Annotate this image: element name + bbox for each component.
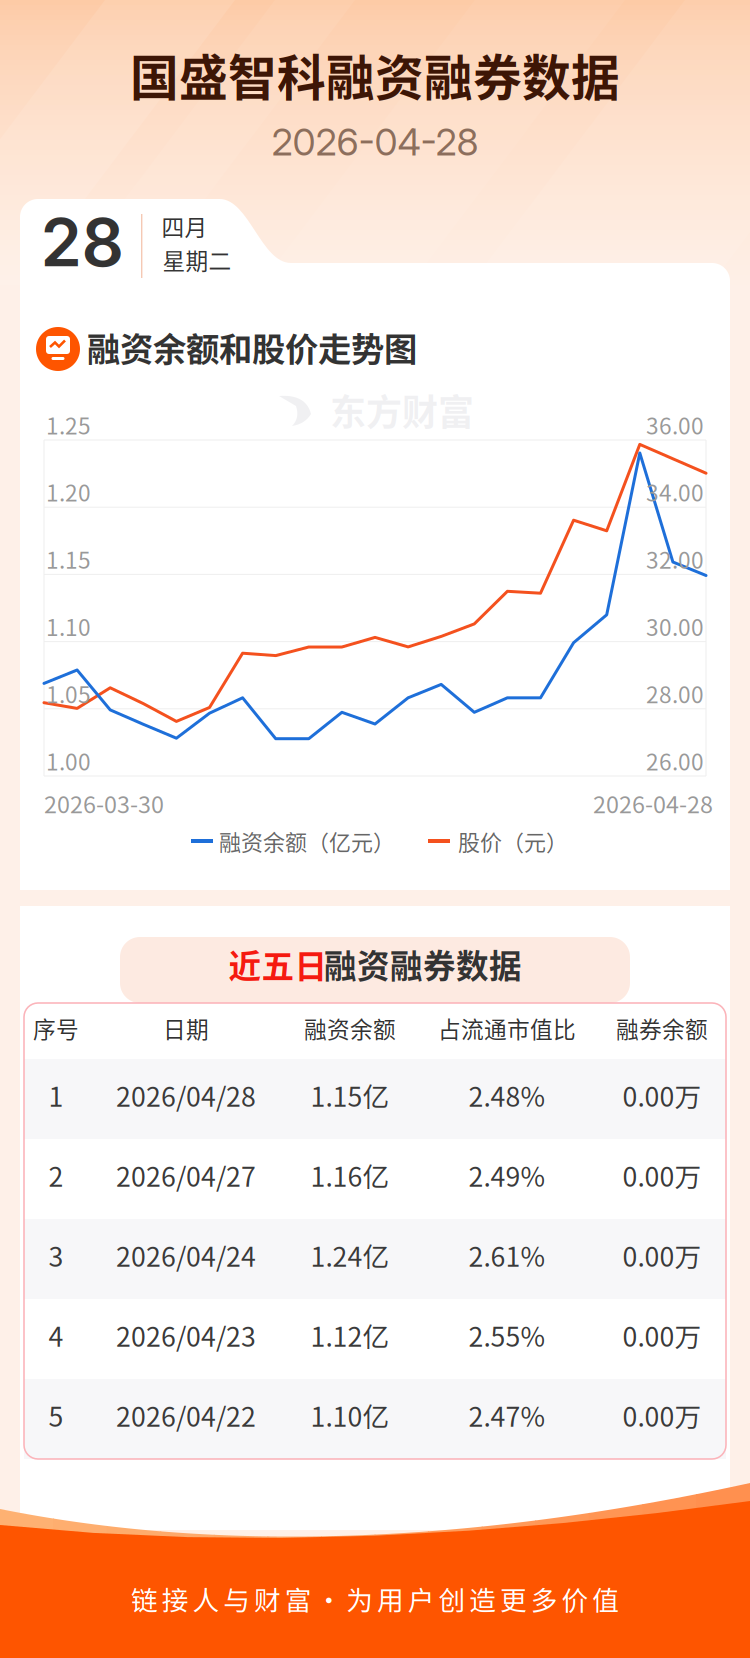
staticText: 5 [48, 1396, 63, 1434]
staticText: 26.00 [646, 744, 704, 777]
staticText: 1 [48, 1076, 63, 1114]
staticText: 1.16亿 [310, 1156, 389, 1194]
staticText: 2.55% [468, 1316, 545, 1354]
staticText: 1.05 [46, 677, 91, 710]
staticText: 融资融券数据 [324, 940, 522, 987]
staticText: 0.00万 [622, 1236, 701, 1274]
staticText: 序号 [33, 1012, 79, 1044]
staticText: 1.20 [46, 475, 91, 508]
staticText: 与 [223, 1579, 250, 1618]
staticText: 1.10 [46, 610, 91, 642]
staticText: 为 [346, 1579, 373, 1618]
staticText: 造 [469, 1579, 496, 1618]
staticText: 1.12亿 [310, 1316, 389, 1354]
staticText: 34.00 [646, 475, 704, 508]
staticText: 财 [254, 1579, 281, 1618]
staticText: 1.15 [46, 542, 91, 575]
staticText: 创 [438, 1579, 465, 1618]
staticText: 1.25 [46, 408, 91, 441]
staticText: 融资余额（亿元） [219, 825, 395, 857]
staticText: 占流通市值比 [438, 1012, 576, 1044]
staticText: 2026/04/27 [116, 1156, 256, 1194]
staticText: 融券余额 [616, 1012, 708, 1044]
staticText: 2.47% [468, 1396, 545, 1434]
staticText: 3 [48, 1236, 63, 1274]
staticText: 富 [285, 1579, 312, 1618]
staticText: 2026/04/28 [116, 1076, 256, 1114]
staticText: 2026/04/23 [116, 1316, 256, 1354]
staticText: 28.00 [646, 677, 704, 710]
staticText: 1.10亿 [310, 1396, 389, 1434]
staticText: 接 [162, 1579, 189, 1618]
staticText: 1.24亿 [310, 1236, 389, 1274]
staticText: 近五日 [228, 940, 327, 987]
staticText: 四月 [161, 210, 207, 242]
staticText: 多 [531, 1579, 558, 1618]
staticText: 0.00万 [622, 1316, 701, 1354]
staticText: 2.48% [468, 1076, 545, 1114]
staticText: 1.15亿 [310, 1076, 389, 1114]
staticText: 融资余额 [304, 1012, 396, 1044]
staticText: 2026-04-28 [271, 119, 478, 165]
staticText: 日期 [163, 1012, 209, 1044]
staticText: 0.00万 [622, 1396, 701, 1434]
staticText: 更 [500, 1579, 527, 1618]
staticText: · [315, 1579, 342, 1618]
staticText: 用 [377, 1579, 404, 1618]
staticText: 星期二 [162, 243, 231, 276]
staticText: 融资余额和股价走势图 [87, 323, 417, 371]
staticText: 30.00 [646, 610, 704, 642]
staticText: 1.00 [46, 744, 91, 777]
staticText: 值 [592, 1579, 619, 1618]
staticText: 价 [561, 1579, 588, 1618]
staticText: 人 [192, 1579, 219, 1618]
staticText: 东方财富 [330, 1212, 474, 1264]
staticText: 0.00万 [622, 1076, 701, 1114]
staticText: 户 [408, 1579, 435, 1618]
staticText: 链 [131, 1579, 158, 1618]
staticText: 2.61% [468, 1236, 545, 1274]
staticText: 股价（元） [458, 825, 568, 857]
staticText: 2026-04-28 [593, 786, 713, 820]
staticText: 4 [48, 1316, 63, 1354]
staticText: 0.00万 [622, 1156, 701, 1194]
staticText: 国盛智科融资融券数据 [130, 39, 620, 110]
staticText: 28 [40, 202, 124, 282]
staticText: 2 [48, 1156, 63, 1194]
staticText: 2026-03-30 [44, 786, 164, 820]
staticText: 2026/04/22 [116, 1396, 256, 1434]
staticText: 36.00 [646, 408, 704, 441]
staticText: 2026/04/24 [116, 1236, 256, 1274]
staticText: 东方财富 [330, 384, 474, 436]
staticText: 2.49% [468, 1156, 545, 1194]
staticText: 32.00 [646, 542, 704, 575]
